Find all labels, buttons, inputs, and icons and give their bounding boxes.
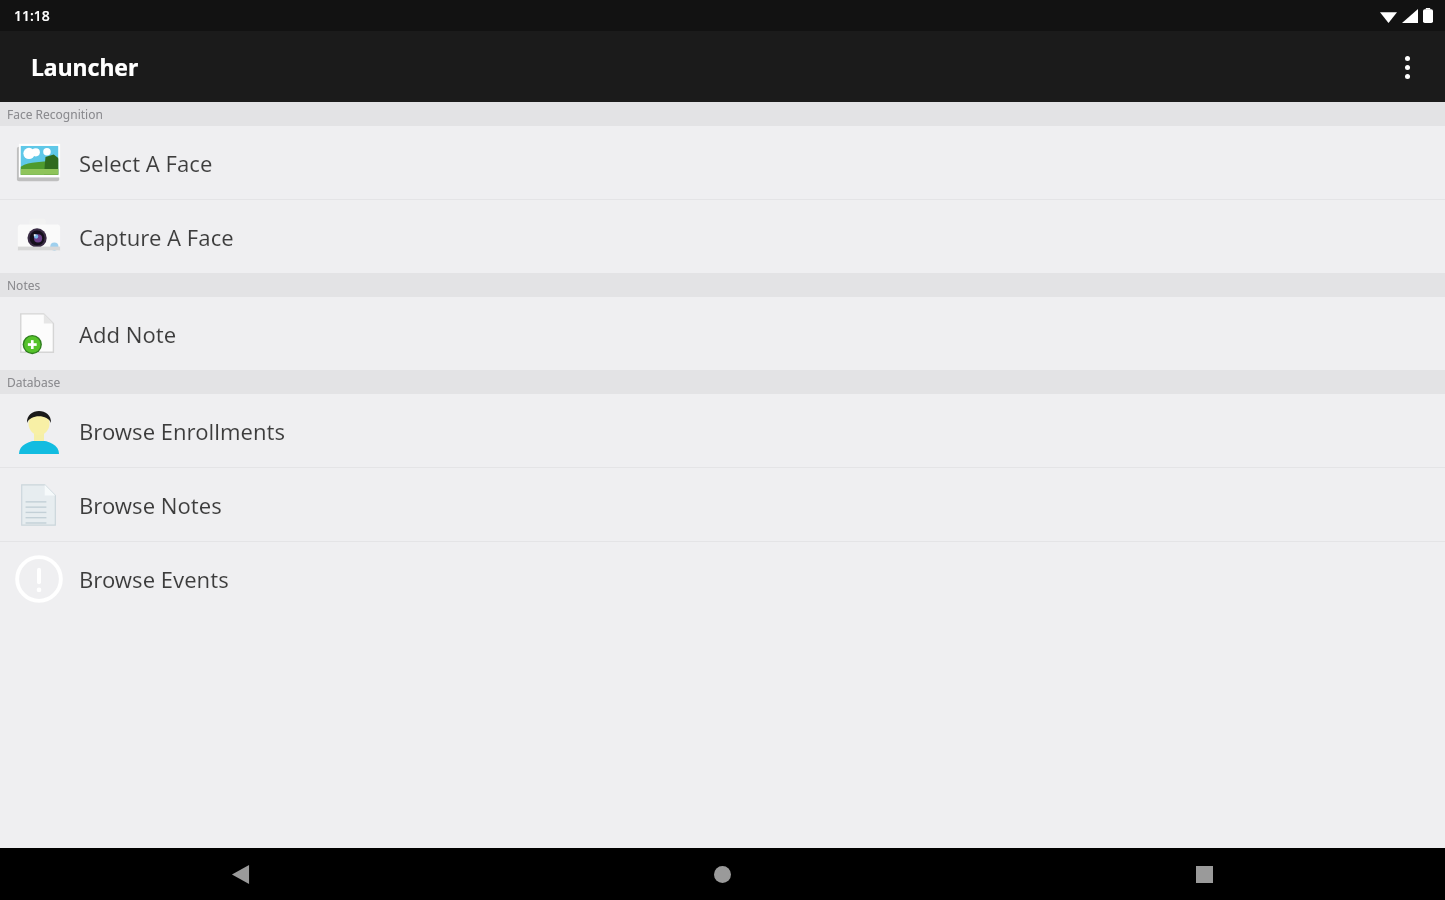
staticText: Select A Face [79,148,213,178]
staticText: Capture A Face [79,222,234,252]
staticText: Launcher [31,51,139,82]
staticText: Database [7,374,61,390]
button[interactable]: Back [0,848,481,900]
button[interactable]: Home [481,848,963,900]
staticText: Notes [7,277,41,293]
staticText: Add Note [79,319,177,349]
button[interactable]: More options [1383,43,1431,91]
button[interactable]: Browse Events [0,542,1445,615]
staticText: Face Recognition [7,106,103,122]
button[interactable]: Add Note [0,297,1445,370]
button[interactable]: Select A Face [0,126,1445,199]
button[interactable]: Capture A Face [0,200,1445,273]
staticText: Browse Enrollments [79,416,285,446]
button[interactable]: Recents [963,848,1445,900]
button[interactable]: Browse Notes [0,468,1445,541]
button[interactable]: Browse Enrollments [0,394,1445,467]
staticText: 11:18 [14,6,50,25]
staticText: Browse Notes [79,490,222,520]
staticText: Browse Events [79,564,229,594]
